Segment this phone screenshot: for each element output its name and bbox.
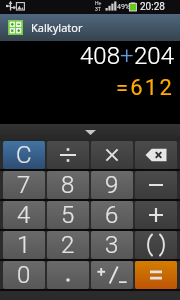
button[interactable]: Equals [135, 261, 177, 289]
staticText: 0 [17, 261, 31, 289]
staticText: 3T [95, 6, 101, 12]
staticText: 3 [105, 231, 119, 259]
button[interactable]: Multiply [91, 141, 133, 169]
staticText: 5 [61, 201, 75, 229]
button[interactable]: 0 [3, 261, 45, 289]
staticText: 204 [134, 42, 174, 70]
staticText: 1 [17, 231, 31, 259]
button[interactable]: Plus [135, 201, 177, 229]
staticText: 8 [61, 171, 75, 199]
button[interactable]: 8 [47, 171, 89, 199]
button[interactable]: 3 [91, 231, 133, 259]
staticText: Kalkylator [31, 20, 83, 35]
button[interactable]: Plus minus [91, 261, 133, 289]
button[interactable]: Minus [135, 171, 177, 199]
button[interactable]: C [3, 141, 45, 169]
button[interactable]: Collapse keypad [0, 124, 180, 141]
staticText: H+ [95, 0, 102, 6]
staticText: C [16, 141, 32, 169]
button[interactable]: 7 [3, 171, 45, 199]
staticText: 408 [80, 42, 120, 70]
staticText: 7 [17, 171, 31, 199]
button[interactable]: 6 [91, 201, 133, 229]
button[interactable]: 4 [3, 201, 45, 229]
button[interactable]: Parentheses [135, 231, 177, 259]
staticText: 49% [117, 3, 130, 11]
button[interactable]: 5 [47, 201, 89, 229]
staticText: + [120, 42, 134, 70]
button[interactable]: 9 [91, 171, 133, 199]
staticText: 2 [61, 231, 75, 259]
staticText: 6 [105, 201, 119, 229]
button[interactable]: Delete [135, 141, 177, 169]
staticText: 20:28 [140, 1, 165, 13]
button[interactable]: Divide [47, 141, 89, 169]
staticText: 4 [17, 201, 31, 229]
button[interactable]: Kalkylator [0, 14, 180, 41]
button[interactable]: Decimal point [47, 261, 89, 289]
staticText: 9 [105, 171, 119, 199]
staticText: =612 [116, 75, 174, 101]
button[interactable]: 1 [3, 231, 45, 259]
button[interactable]: 2 [47, 231, 89, 259]
